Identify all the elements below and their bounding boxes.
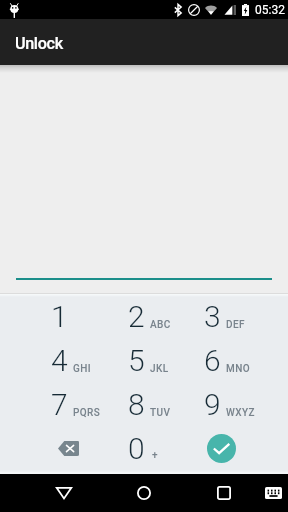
button[interactable]: 4 [30, 338, 107, 382]
staticText: 6 [204, 343, 221, 378]
staticText: JKL [150, 363, 169, 375]
staticText: 4 [51, 343, 68, 378]
staticText: 0 [128, 431, 145, 466]
button[interactable]: Backspace [30, 426, 107, 470]
button[interactable]: Keyboard [259, 479, 287, 507]
staticText: WXYZ [226, 407, 255, 419]
button[interactable]: 6 [183, 338, 259, 382]
staticText: 2 [128, 299, 145, 334]
staticText: DEF [226, 319, 245, 331]
button[interactable]: Home [120, 474, 168, 512]
staticText: PQRS [73, 407, 101, 419]
button[interactable]: Recent apps [200, 474, 248, 512]
staticText: MNO [226, 363, 250, 375]
staticText: + [152, 450, 158, 462]
staticText: 7 [51, 387, 68, 422]
button[interactable]: 8 [107, 382, 183, 426]
staticText: 05:32 [255, 3, 285, 17]
staticText: 3 [204, 299, 221, 334]
button[interactable]: 5 [107, 338, 183, 382]
button[interactable]: 2 [107, 294, 183, 338]
staticText: TUV [150, 407, 171, 419]
button[interactable]: 7 [30, 382, 107, 426]
button[interactable]: 9 [183, 382, 259, 426]
staticText: Unlock [15, 34, 63, 53]
staticText: 1 [51, 299, 68, 334]
staticText: GHI [73, 363, 91, 375]
button[interactable]: 3 [183, 294, 259, 338]
button[interactable]: 1 [30, 294, 107, 338]
staticText: ABC [150, 319, 171, 331]
staticText: 8 [128, 387, 145, 422]
staticText: 9 [204, 387, 221, 422]
button[interactable]: Confirm [207, 434, 236, 463]
staticText: 5 [128, 343, 145, 378]
button[interactable]: 0 [107, 426, 183, 470]
button[interactable]: Back [40, 474, 88, 512]
